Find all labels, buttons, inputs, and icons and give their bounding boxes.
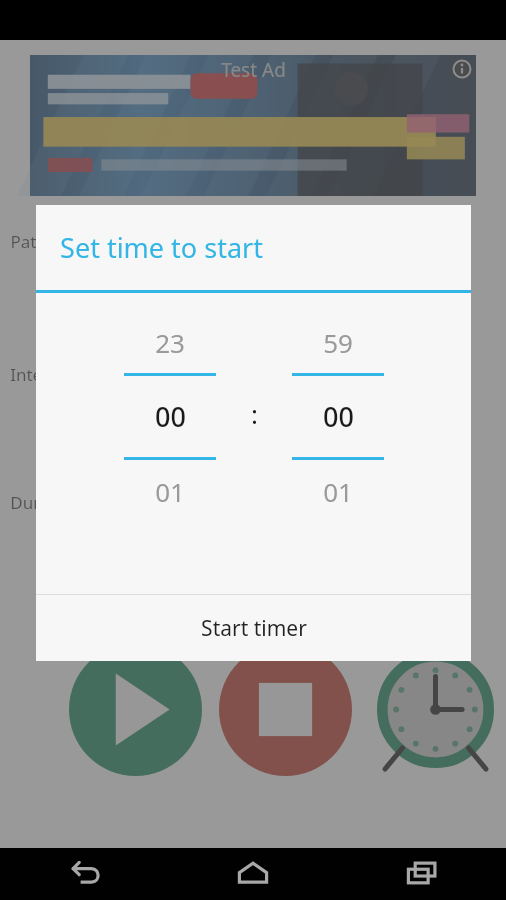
staticText: 00 <box>323 398 354 435</box>
staticText: Set time to start <box>60 229 263 266</box>
button[interactable]: Home <box>168 848 337 900</box>
staticText: Pattern <box>10 230 70 253</box>
staticText: 01 <box>155 474 185 509</box>
button[interactable]: Recent apps <box>337 848 506 900</box>
staticText: Start timer <box>201 614 307 643</box>
button[interactable]: 23 <box>114 311 226 373</box>
staticText: Duration <box>10 491 81 514</box>
button[interactable]: Stop <box>219 643 352 776</box>
staticText: 23 <box>155 325 185 360</box>
button[interactable]: Start <box>69 643 202 776</box>
button[interactable]: 00 <box>114 376 226 457</box>
staticText: Interval <box>10 363 72 386</box>
staticText: 59 <box>323 325 353 360</box>
staticText: Test Ad <box>221 57 286 83</box>
staticText: 01 <box>323 474 353 509</box>
button[interactable]: Ad information <box>452 59 472 79</box>
button[interactable]: 59 <box>282 311 394 373</box>
button[interactable]: Set timer <box>369 643 502 776</box>
button[interactable]: Start timer <box>36 595 471 661</box>
button[interactable]: Advertisement <box>30 55 476 196</box>
staticText: 00 <box>155 398 186 435</box>
button[interactable]: 01 <box>114 460 226 522</box>
staticText: : <box>251 396 258 431</box>
button[interactable]: 01 <box>282 460 394 522</box>
button[interactable]: 00 <box>282 376 394 457</box>
button[interactable]: Back <box>0 848 168 900</box>
